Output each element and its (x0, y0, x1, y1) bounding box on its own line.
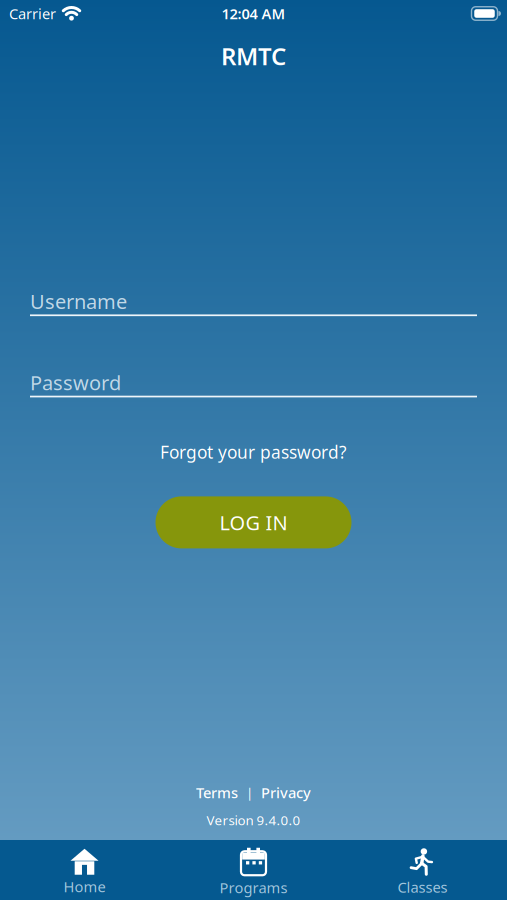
button[interactable]: Password (0, 369, 507, 397)
staticText: | (246, 784, 253, 801)
button[interactable]: Forgot your password? (160, 440, 347, 463)
staticText: LOG IN (219, 509, 287, 536)
staticText: RMTC (221, 40, 286, 72)
staticText: Classes (397, 877, 447, 897)
staticText: 12:04 AM (221, 4, 285, 23)
button[interactable]: Privacy (261, 783, 311, 802)
staticText: Version 9.4.0.0 (206, 811, 300, 829)
staticText: Terms (196, 783, 238, 802)
staticText: Home (63, 877, 105, 896)
button[interactable]: Terms (196, 783, 238, 802)
staticText: Privacy (261, 783, 311, 802)
staticText: Programs (219, 878, 287, 897)
staticText: Username (30, 288, 127, 314)
button[interactable]: Classes (338, 843, 507, 897)
button[interactable]: LOG IN (155, 496, 351, 548)
button[interactable]: Username (0, 288, 507, 316)
button[interactable]: Home (0, 844, 169, 896)
button[interactable]: Programs (169, 843, 338, 897)
staticText: Carrier (9, 4, 56, 23)
staticText: Password (30, 369, 121, 396)
staticText: Forgot your password? (160, 440, 347, 463)
